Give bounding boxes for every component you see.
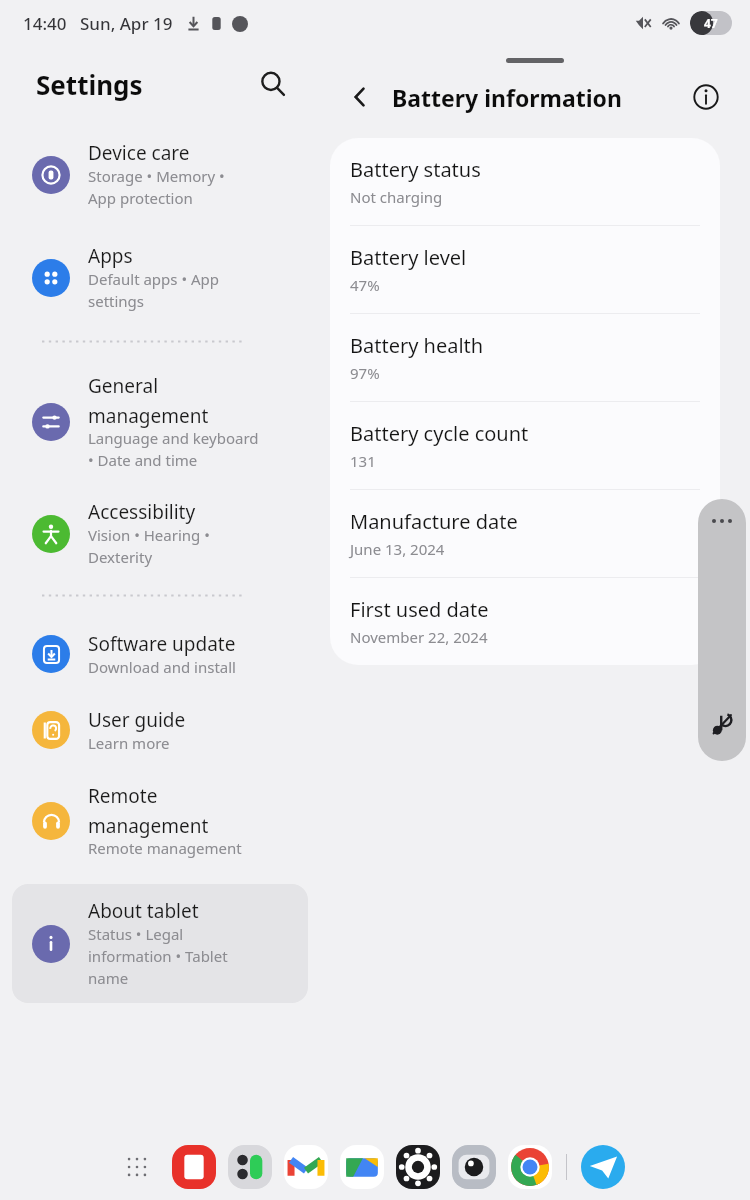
- button[interactable]: App: [284, 1145, 328, 1189]
- button[interactable]: App: [581, 1145, 625, 1189]
- button[interactable]: App: [452, 1145, 496, 1189]
- button[interactable]: Software update: [0, 627, 320, 681]
- staticText: Battery status: [350, 156, 481, 183]
- button[interactable]: Battery status: [330, 138, 720, 226]
- staticText: 131: [350, 451, 376, 471]
- staticText: Battery cycle count: [350, 420, 529, 447]
- button[interactable]: App: [340, 1145, 384, 1189]
- button[interactable]: Search: [250, 61, 296, 107]
- staticText: General management: [88, 373, 209, 428]
- button[interactable]: Battery cycle count: [330, 402, 720, 490]
- staticText: Settings: [36, 67, 143, 102]
- staticText: Download and install: [88, 657, 236, 677]
- staticText: Sun, Apr 19: [80, 12, 173, 35]
- button[interactable]: User guide: [0, 703, 320, 757]
- button[interactable]: Back: [338, 75, 382, 119]
- staticText: Battery level: [350, 244, 467, 271]
- staticText: Battery health: [350, 332, 484, 359]
- staticText: 47: [704, 15, 718, 31]
- staticText: 97%: [350, 363, 380, 383]
- staticText: June 13, 2024: [350, 539, 445, 559]
- staticText: 14:40: [23, 12, 67, 35]
- staticText: Storage • Memory • App protection: [88, 166, 225, 209]
- staticText: Apps: [88, 243, 133, 269]
- button[interactable]: About tablet: [12, 884, 308, 1003]
- button[interactable]: App: [172, 1145, 216, 1189]
- staticText: Language and keyboard • Date and time: [88, 428, 259, 471]
- staticText: Software update: [88, 631, 236, 657]
- button[interactable]: Battery level: [330, 226, 720, 314]
- staticText: Accessibility: [88, 499, 196, 525]
- staticText: Remote management: [88, 783, 209, 838]
- button[interactable]: Device care: [0, 136, 320, 213]
- button[interactable]: Apps: [0, 239, 320, 316]
- staticText: Manufacture date: [350, 508, 518, 535]
- button[interactable]: App: [508, 1145, 552, 1189]
- staticText: Battery information: [392, 82, 622, 113]
- staticText: Device care: [88, 140, 190, 166]
- staticText: About tablet: [88, 898, 199, 924]
- staticText: First used date: [350, 596, 489, 623]
- staticText: Not charging: [350, 187, 443, 207]
- staticText: Default apps • App settings: [88, 269, 219, 312]
- button[interactable]: Edge panel: [698, 499, 746, 761]
- button[interactable]: App: [228, 1145, 272, 1189]
- button[interactable]: App: [396, 1145, 440, 1189]
- staticText: Learn more: [88, 733, 170, 753]
- button[interactable]: General management: [0, 369, 320, 475]
- button[interactable]: Battery health: [330, 314, 720, 402]
- button[interactable]: Manufacture date: [330, 490, 720, 578]
- staticText: 47%: [350, 275, 380, 295]
- staticText: User guide: [88, 707, 186, 733]
- button[interactable]: Accessibility: [0, 495, 320, 572]
- button[interactable]: Info: [684, 75, 728, 119]
- button[interactable]: First used date: [330, 578, 720, 665]
- button[interactable]: All apps: [114, 1144, 160, 1190]
- staticText: November 22, 2024: [350, 627, 488, 647]
- staticText: Vision • Hearing • Dexterity: [88, 525, 210, 568]
- staticText: Status • Legal information • Tablet name: [88, 924, 228, 989]
- staticText: Remote management: [88, 838, 242, 858]
- button[interactable]: Remote management: [0, 779, 320, 862]
